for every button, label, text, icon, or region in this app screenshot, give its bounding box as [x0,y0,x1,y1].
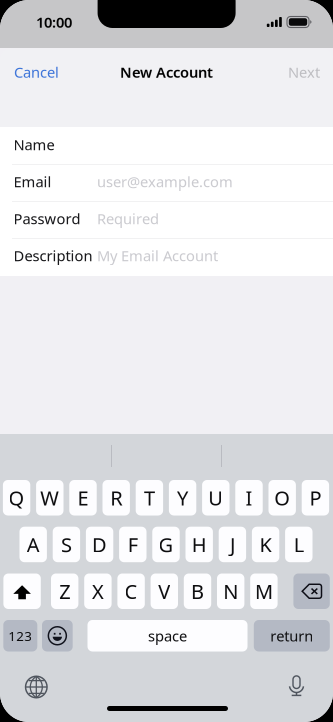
staticText: 123 [8,627,32,645]
button[interactable]: A [19,527,47,562]
button[interactable]: J [219,527,246,562]
button[interactable]: S [53,527,80,562]
button[interactable]: M [250,573,278,609]
staticText: K [260,531,272,558]
button[interactable]: space [87,620,247,651]
staticText: Q [9,484,25,511]
staticText: Z [59,578,70,605]
staticText: S [61,531,72,558]
button[interactable]: Name [0,126,333,163]
button[interactable]: Cancel [14,56,74,88]
staticText: Cancel [14,62,59,82]
button[interactable]: B [184,573,211,609]
staticText: Required [97,209,159,228]
button[interactable]: F [119,527,146,562]
staticText: G [158,531,173,558]
button[interactable]: P [302,480,329,515]
staticText: 10:00 [36,12,72,32]
button[interactable]: W [36,480,63,515]
button[interactable]: Emoji [42,620,73,651]
button[interactable]: Next [270,56,320,88]
staticText: R [110,484,122,511]
button[interactable]: Description [0,237,333,274]
button[interactable]: N [217,573,244,609]
staticText: space [148,626,187,645]
button[interactable]: O [268,480,296,515]
staticText: My Email Account [97,246,218,265]
button[interactable]: I [235,480,263,515]
button[interactable]: Q [3,480,30,515]
button[interactable]: L [285,527,312,562]
staticText: A [27,531,40,558]
button[interactable]: T [136,480,163,515]
button[interactable]: 123 [3,620,37,651]
staticText: H [192,531,207,558]
staticText: W [40,484,59,511]
button[interactable]: Next keyboard [24,675,48,699]
staticText: Description [13,246,92,265]
button[interactable]: return [254,620,330,651]
button[interactable]: R [102,480,130,515]
button[interactable]: G [152,527,180,562]
staticText: Password [13,209,80,228]
staticText: F [128,531,138,558]
button[interactable]: Dictation [284,674,308,698]
staticText: return [270,626,313,645]
button[interactable]: X [84,573,112,609]
staticText: N [223,578,238,605]
button[interactable]: H [185,527,213,562]
staticText: T [144,484,155,511]
staticText: Y [177,484,188,511]
button[interactable]: Y [169,480,196,515]
button[interactable]: C [117,573,145,609]
staticText: P [309,484,321,511]
staticText: X [92,578,104,605]
staticText: I [245,484,252,511]
staticText: O [274,484,290,511]
staticText: New Account [120,62,213,82]
staticText: U [208,484,223,511]
staticText: J [230,531,235,558]
staticText: Email [13,172,51,191]
staticText: B [191,578,204,605]
staticText: Name [13,135,54,154]
staticText: Next [288,62,320,82]
staticText: user@example.com [97,172,233,191]
staticText: M [255,578,273,605]
staticText: E [77,484,88,511]
button[interactable]: Delete [293,573,330,609]
button[interactable]: K [252,527,279,562]
staticText: D [92,531,107,558]
staticText: V [158,578,170,605]
button[interactable]: Password [0,200,333,237]
button[interactable]: Z [51,573,78,609]
button[interactable]: D [86,527,113,562]
staticText: L [294,531,304,558]
staticText: C [125,578,138,605]
button[interactable]: Shift [3,573,41,609]
button[interactable]: V [151,573,178,609]
button[interactable]: Email [0,163,333,200]
button[interactable]: E [69,480,97,515]
button[interactable]: U [202,480,229,515]
